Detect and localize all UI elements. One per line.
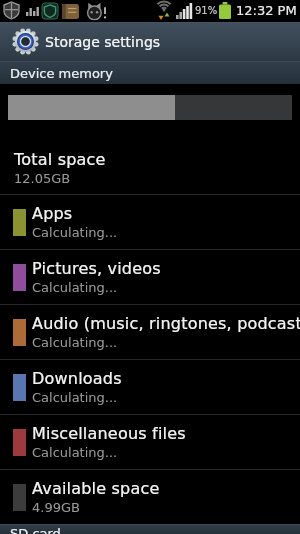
staticText: Pictures, videos bbox=[32, 259, 161, 278]
staticText: 12.05GB bbox=[14, 171, 71, 186]
staticText: Device memory bbox=[10, 66, 113, 81]
staticText: 4.99GB bbox=[32, 500, 80, 515]
staticText: Downloads bbox=[32, 369, 122, 388]
staticText: Available space bbox=[32, 479, 160, 498]
button[interactable]: Available space bbox=[0, 470, 300, 524]
button[interactable]: Audio (music, ringtones, podcasts) bbox=[0, 305, 300, 359]
staticText: 12:32 PM bbox=[236, 3, 297, 18]
staticText: Audio (music, ringtones, podcasts) bbox=[32, 314, 300, 333]
staticText: Apps bbox=[32, 204, 73, 223]
button[interactable]: Miscellaneous files bbox=[0, 415, 300, 469]
staticText: Storage settings bbox=[45, 34, 161, 50]
staticText: Miscellaneous files bbox=[32, 424, 186, 443]
staticText: Calculating... bbox=[32, 445, 118, 460]
staticText: 91% bbox=[195, 5, 218, 17]
button[interactable]: Apps bbox=[0, 195, 300, 249]
button[interactable]: Downloads bbox=[0, 360, 300, 414]
button[interactable]: Pictures, videos bbox=[0, 250, 300, 304]
staticText: Calculating... bbox=[32, 280, 118, 295]
staticText: SD card bbox=[10, 526, 61, 534]
staticText: Calculating... bbox=[32, 390, 118, 405]
button[interactable]: Total space bbox=[0, 142, 300, 194]
staticText: Calculating... bbox=[32, 225, 118, 240]
button[interactable]: Storage settings bbox=[0, 22, 300, 61]
staticText: Total space bbox=[14, 150, 106, 169]
staticText: Calculating... bbox=[32, 335, 118, 350]
